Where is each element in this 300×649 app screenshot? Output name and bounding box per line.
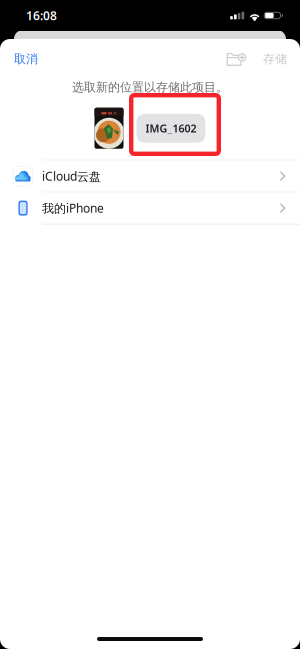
staticText: 存储 [263, 52, 287, 66]
staticText: iCloud云盘 [42, 168, 101, 184]
button[interactable]: 取消 [14, 46, 48, 72]
staticText: 选取新的位置以存储此项目。 [72, 80, 228, 95]
staticText: IMG_1602 [145, 121, 196, 135]
button[interactable]: IMG_1602 [136, 114, 205, 143]
button[interactable]: iCloud云盘 [0, 160, 300, 192]
staticText: 取消 [14, 52, 38, 66]
button[interactable]: 我的iPhone [0, 192, 300, 224]
button[interactable]: New Folder [222, 46, 249, 72]
staticText: 16:08 [26, 7, 57, 23]
staticText: 我的iPhone [42, 200, 104, 216]
button[interactable]: 存储 [249, 46, 287, 72]
